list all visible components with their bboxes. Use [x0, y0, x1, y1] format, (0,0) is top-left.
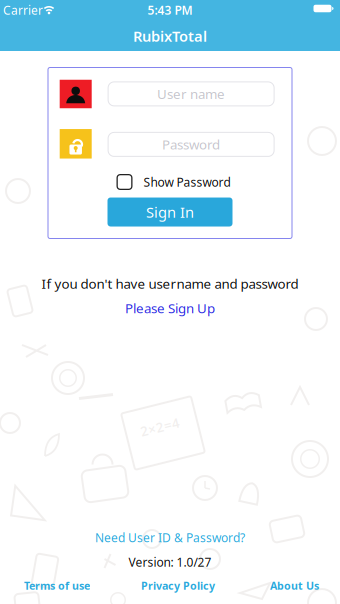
staticText: Need User ID & Password? — [95, 529, 245, 545]
staticText: Please Sign Up — [125, 299, 215, 317]
staticText: User name — [157, 85, 225, 103]
staticText: If you don't have username and password — [41, 275, 298, 292]
staticText: Show Password — [143, 174, 230, 190]
staticText: Version: 1.0/27 — [128, 554, 211, 570]
staticText: 5:43 PM — [147, 2, 192, 18]
staticText: Password — [162, 135, 220, 153]
button[interactable]: Please Sign Up — [125, 299, 215, 317]
staticText: 2×2=4 — [140, 418, 180, 436]
staticText: Sign In — [146, 202, 194, 222]
staticText: Carrier — [3, 2, 43, 18]
button[interactable]: About Us — [270, 578, 319, 593]
staticText: Privacy Policy — [141, 578, 215, 593]
button[interactable]: Privacy Policy — [141, 578, 215, 593]
staticText: RubixTotal — [133, 26, 207, 46]
button[interactable]: Password — [108, 132, 275, 157]
button[interactable]: Need User ID & Password? — [95, 529, 245, 545]
staticText: About Us — [270, 578, 319, 593]
button[interactable]: Show Password — [116, 174, 230, 190]
button[interactable]: Terms of use — [24, 578, 90, 593]
staticText: Terms of use — [24, 578, 90, 593]
button[interactable]: Sign In — [107, 197, 232, 226]
button[interactable]: User name — [108, 81, 275, 106]
